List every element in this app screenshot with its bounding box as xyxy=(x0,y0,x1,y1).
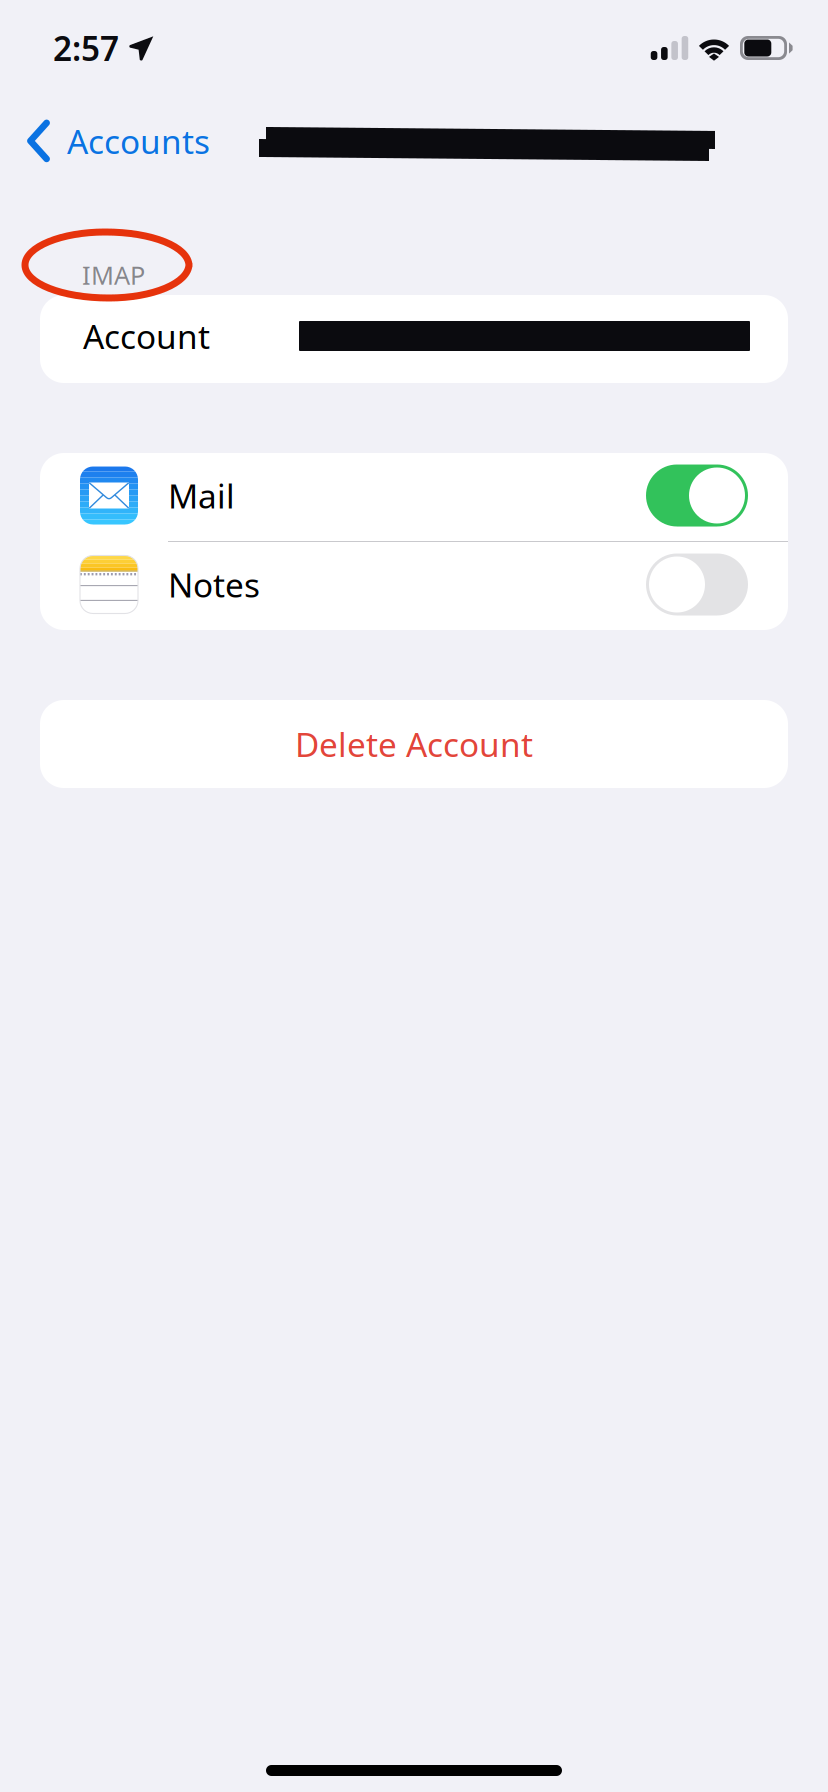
button[interactable]: Accounts xyxy=(0,109,224,169)
button[interactable]: Delete Account xyxy=(40,700,788,788)
staticText: Notes xyxy=(168,562,260,607)
button[interactable]: Notes xyxy=(40,542,788,630)
staticText: Delete Account xyxy=(295,722,533,766)
staticText: Account xyxy=(83,314,210,358)
button[interactable]: Mail xyxy=(40,453,788,541)
staticText: Accounts xyxy=(67,119,210,163)
button[interactable]: Account xyxy=(40,295,788,383)
staticText: IMAP xyxy=(82,258,145,292)
staticText: Mail xyxy=(168,473,235,518)
staticText: 2:57 xyxy=(53,26,119,70)
